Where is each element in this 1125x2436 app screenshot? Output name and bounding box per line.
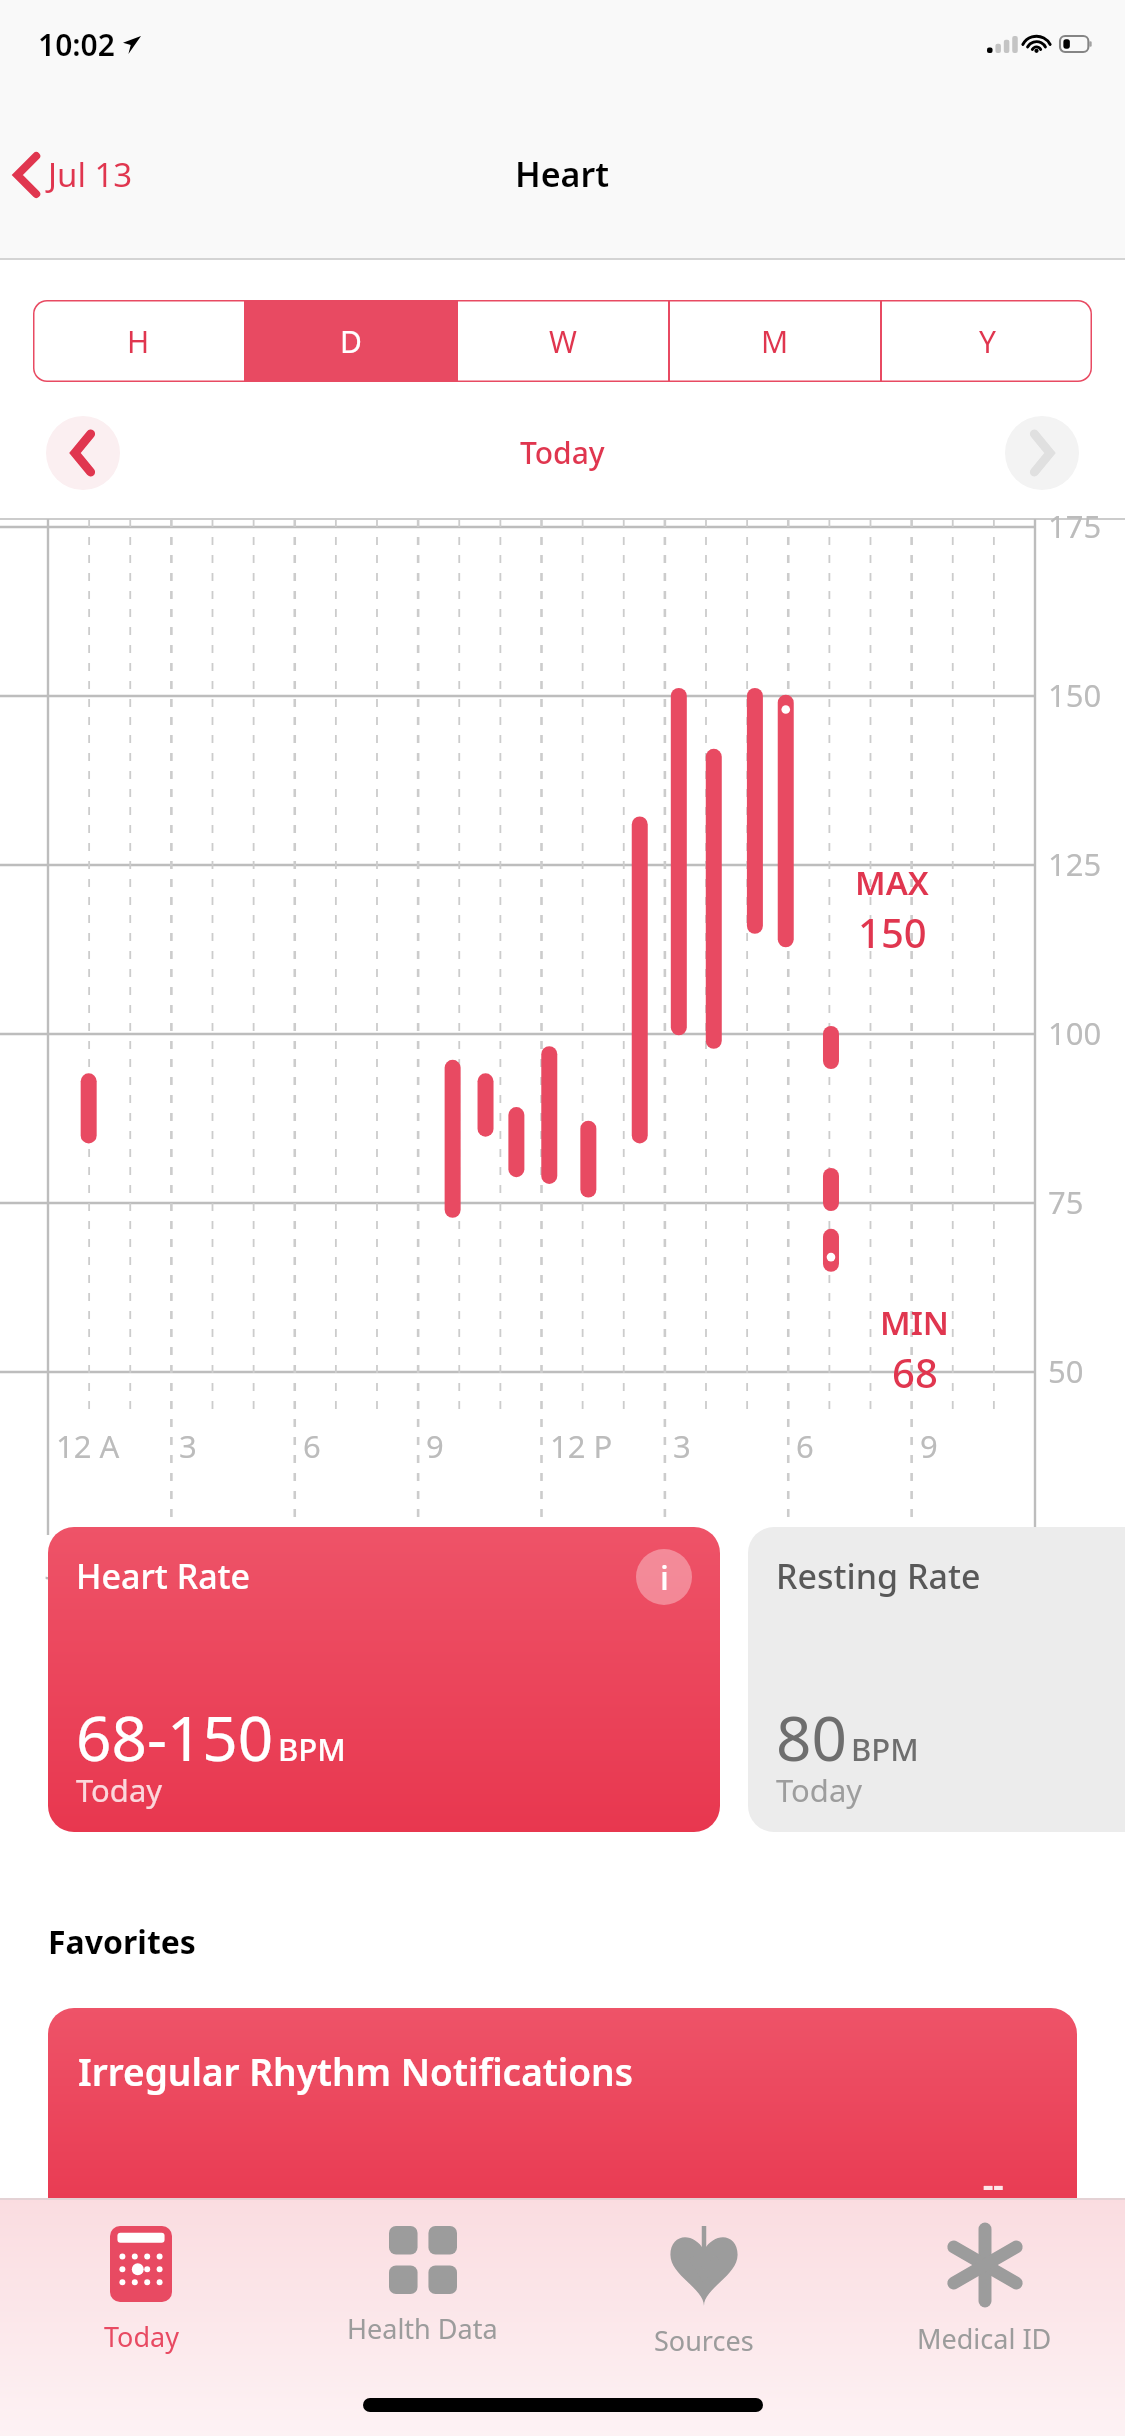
staticText: 150	[1048, 674, 1102, 716]
staticText: MIN	[880, 1300, 950, 1345]
staticText: 68	[892, 1345, 938, 1399]
staticText: 6	[796, 1425, 814, 1467]
staticText: Sources	[654, 2322, 754, 2359]
button[interactable]: W	[458, 300, 668, 382]
button[interactable]: Previous day	[46, 416, 120, 490]
staticText: 68-150	[76, 1695, 274, 1779]
staticText: 12 A	[56, 1425, 120, 1467]
button[interactable]: Sources	[563, 2198, 844, 2378]
staticText: Resting Rate	[776, 1553, 981, 1599]
button[interactable]: Health Data	[282, 2198, 563, 2378]
staticText: Today	[776, 1769, 863, 1811]
staticText: BPM	[851, 1728, 919, 1770]
staticText: BPM	[278, 1728, 346, 1770]
staticText: 9	[426, 1425, 444, 1467]
button[interactable]: Info	[636, 1549, 692, 1605]
button[interactable]: Next day	[1005, 416, 1079, 490]
staticText: Jul 13	[48, 152, 133, 197]
button[interactable]: Jul 13	[0, 142, 149, 207]
button[interactable]: Resting Rate	[748, 1527, 1125, 1832]
staticText: D	[340, 321, 362, 362]
button[interactable]: Today	[0, 2198, 282, 2378]
button[interactable]: Heart Rate	[48, 1527, 720, 1832]
staticText: --	[983, 2163, 1004, 2207]
staticText: Heart	[515, 151, 610, 197]
staticText: 3	[179, 1425, 197, 1467]
staticText: Health Data	[347, 2310, 498, 2347]
staticText: Medical ID	[917, 2320, 1052, 2357]
staticText: 50	[1048, 1350, 1084, 1392]
staticText: Today	[76, 1769, 163, 1811]
staticText: 80	[776, 1695, 847, 1779]
button[interactable]: Y	[882, 300, 1092, 382]
button[interactable]: D	[246, 300, 456, 382]
staticText: Y	[979, 321, 996, 362]
staticText: 175	[1048, 505, 1102, 547]
staticText: i	[660, 1555, 669, 1600]
staticText: 9	[920, 1425, 938, 1467]
staticText: H	[127, 321, 150, 362]
staticText: Irregular Rhythm Notifications	[78, 2046, 633, 2096]
staticText: 3	[673, 1425, 691, 1467]
button[interactable]: H	[33, 300, 244, 382]
staticText: W	[549, 321, 577, 362]
staticText: 100	[1048, 1012, 1102, 1054]
staticText: 125	[1048, 843, 1102, 885]
staticText: Favorites	[48, 1920, 196, 1964]
button[interactable]: Medical ID	[844, 2198, 1125, 2378]
staticText: Heart Rate	[76, 1553, 251, 1599]
button[interactable]: Irregular Rhythm Notifications	[48, 2008, 1077, 2238]
staticText: Jul 13	[48, 1543, 123, 1582]
staticText: MAX	[855, 860, 929, 905]
staticText: 10:02	[38, 24, 115, 65]
staticText: 75	[1048, 1181, 1084, 1223]
staticText: 150	[858, 905, 927, 959]
staticText: 12 P	[550, 1425, 613, 1467]
staticText: Today	[104, 2318, 179, 2355]
staticText: 6	[303, 1425, 321, 1467]
staticText: Today	[520, 432, 605, 473]
button[interactable]: M	[670, 300, 880, 382]
staticText: M	[761, 321, 789, 362]
